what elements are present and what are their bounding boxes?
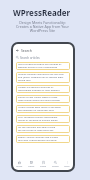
button[interactable]: My site uncovers and able to bring the t… bbox=[16, 125, 70, 133]
button[interactable]: Back bbox=[16, 47, 73, 53]
button[interactable]: More WordPress plugins get complex as we… bbox=[16, 62, 70, 70]
staticText: Design Meets Functionality: Creates a Na… bbox=[16, 20, 69, 33]
other: Home bbox=[18, 161, 21, 164]
staticText: Latest bbox=[28, 165, 35, 168]
staticText: Home bbox=[16, 165, 23, 168]
staticText: Search articles bbox=[20, 56, 40, 60]
staticText: Family of New Tunnel ideals to make news… bbox=[18, 96, 61, 102]
staticText: Saved bbox=[40, 165, 47, 168]
button[interactable]: Michael Vaughan announced his 20th year … bbox=[16, 72, 70, 83]
other: Back bbox=[16, 49, 19, 52]
other: Search bbox=[16, 56, 19, 59]
button[interactable]: Report: Should consider Web-a-Panel Tech… bbox=[16, 135, 70, 143]
button[interactable]: Search bbox=[16, 55, 73, 60]
button[interactable]: Search bbox=[49, 161, 61, 170]
staticText: WPressReader bbox=[13, 7, 71, 18]
button[interactable]: Family of New Tunnel ideals to make news… bbox=[16, 95, 70, 103]
staticText: Report: Should consider Web-a-Panel Tech… bbox=[18, 136, 59, 142]
button[interactable]: Lovesac successfully launches its Market… bbox=[16, 85, 70, 93]
button[interactable]: Latest bbox=[25, 161, 37, 170]
staticText: Arhaus creates eight sellers in the give… bbox=[18, 106, 61, 112]
staticText: Michael Vaughan announced his 20th year … bbox=[18, 73, 64, 82]
staticText: My site uncovers and able to bring the t… bbox=[18, 126, 56, 132]
button[interactable]: Arhaus creates eight sellers in the give… bbox=[16, 105, 70, 113]
other: More bbox=[66, 161, 69, 164]
button[interactable]: More bbox=[61, 161, 73, 170]
staticText: More bbox=[64, 165, 70, 168]
other: Latest bbox=[30, 161, 33, 164]
other: Saved bbox=[42, 161, 45, 164]
button[interactable]: Saved bbox=[37, 161, 49, 170]
staticText: Lovesac successfully launches its Market… bbox=[18, 86, 60, 92]
other: Search bbox=[54, 161, 57, 164]
staticText: Search bbox=[21, 48, 32, 53]
button[interactable]: WSN convenes Istanbul Marketplace Money … bbox=[16, 115, 70, 123]
staticText: Search bbox=[52, 165, 59, 168]
button[interactable]: Home bbox=[13, 161, 25, 170]
staticText: More WordPress plugins get complex as we… bbox=[18, 63, 62, 69]
staticText: WSN convenes Istanbul Marketplace Money … bbox=[18, 116, 58, 122]
